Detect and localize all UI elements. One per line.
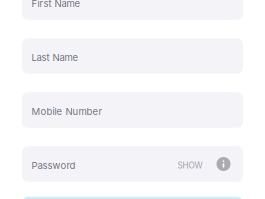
- staticText: Password: [31, 160, 75, 171]
- staticText: Last Name: [31, 52, 78, 63]
- staticText: SHOW: [177, 160, 202, 170]
- button[interactable]: Sign Up: [22, 197, 243, 199]
- button[interactable]: Password: [22, 146, 177, 182]
- button[interactable]: Mobile Number: [22, 92, 233, 128]
- button[interactable]: Password requirements: [216, 146, 233, 182]
- button[interactable]: SHOW: [177, 146, 216, 182]
- staticText: Mobile Number: [31, 106, 102, 117]
- button[interactable]: Last Name: [22, 38, 233, 74]
- button[interactable]: First Name: [22, 0, 233, 20]
- staticText: First Name: [31, 0, 80, 9]
